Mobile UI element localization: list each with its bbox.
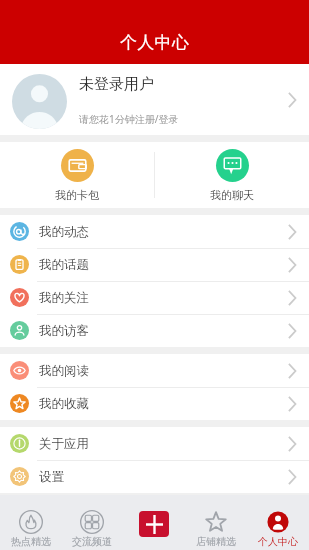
button[interactable]: 我的关注: [0, 281, 309, 314]
button[interactable]: 关于应用: [0, 427, 309, 460]
button[interactable]: 交流频道: [61, 495, 123, 550]
button[interactable]: 未登录用户: [0, 64, 309, 135]
staticText: 我的访客: [39, 323, 89, 339]
staticText: 个人中心: [120, 32, 190, 53]
staticText: 店铺精选: [196, 535, 236, 548]
button[interactable]: 我的话题: [0, 248, 309, 281]
staticText: 我的卡包: [55, 188, 99, 202]
button[interactable]: 我的阅读: [0, 354, 309, 387]
button[interactable]: 我的访客: [0, 314, 309, 347]
staticText: 请您花1分钟注册/登录: [79, 112, 179, 126]
staticText: 我的话题: [39, 257, 89, 273]
button[interactable]: 设置: [0, 460, 309, 493]
button[interactable]: 我的卡包: [0, 142, 154, 208]
staticText: 未登录用户: [79, 75, 154, 94]
staticText: 热点精选: [11, 535, 51, 548]
staticText: 关于应用: [39, 436, 89, 452]
staticText: 我的聊天: [210, 188, 254, 202]
staticText: 设置: [39, 469, 64, 485]
staticText: 我的关注: [39, 290, 89, 306]
staticText: 我的阅读: [39, 363, 89, 379]
staticText: 个人中心: [258, 535, 298, 548]
staticText: 我的动态: [39, 224, 89, 240]
button[interactable]: 我的聊天: [155, 142, 309, 208]
button[interactable]: 个人中心: [247, 495, 309, 550]
staticText: 交流频道: [72, 535, 112, 548]
button[interactable]: 热点精选: [0, 495, 61, 550]
button[interactable]: 我的收藏: [0, 387, 309, 420]
staticText: 我的收藏: [39, 396, 89, 412]
button[interactable]: Post: [123, 495, 185, 550]
button[interactable]: 我的动态: [0, 215, 309, 248]
button[interactable]: 店铺精选: [185, 495, 247, 550]
